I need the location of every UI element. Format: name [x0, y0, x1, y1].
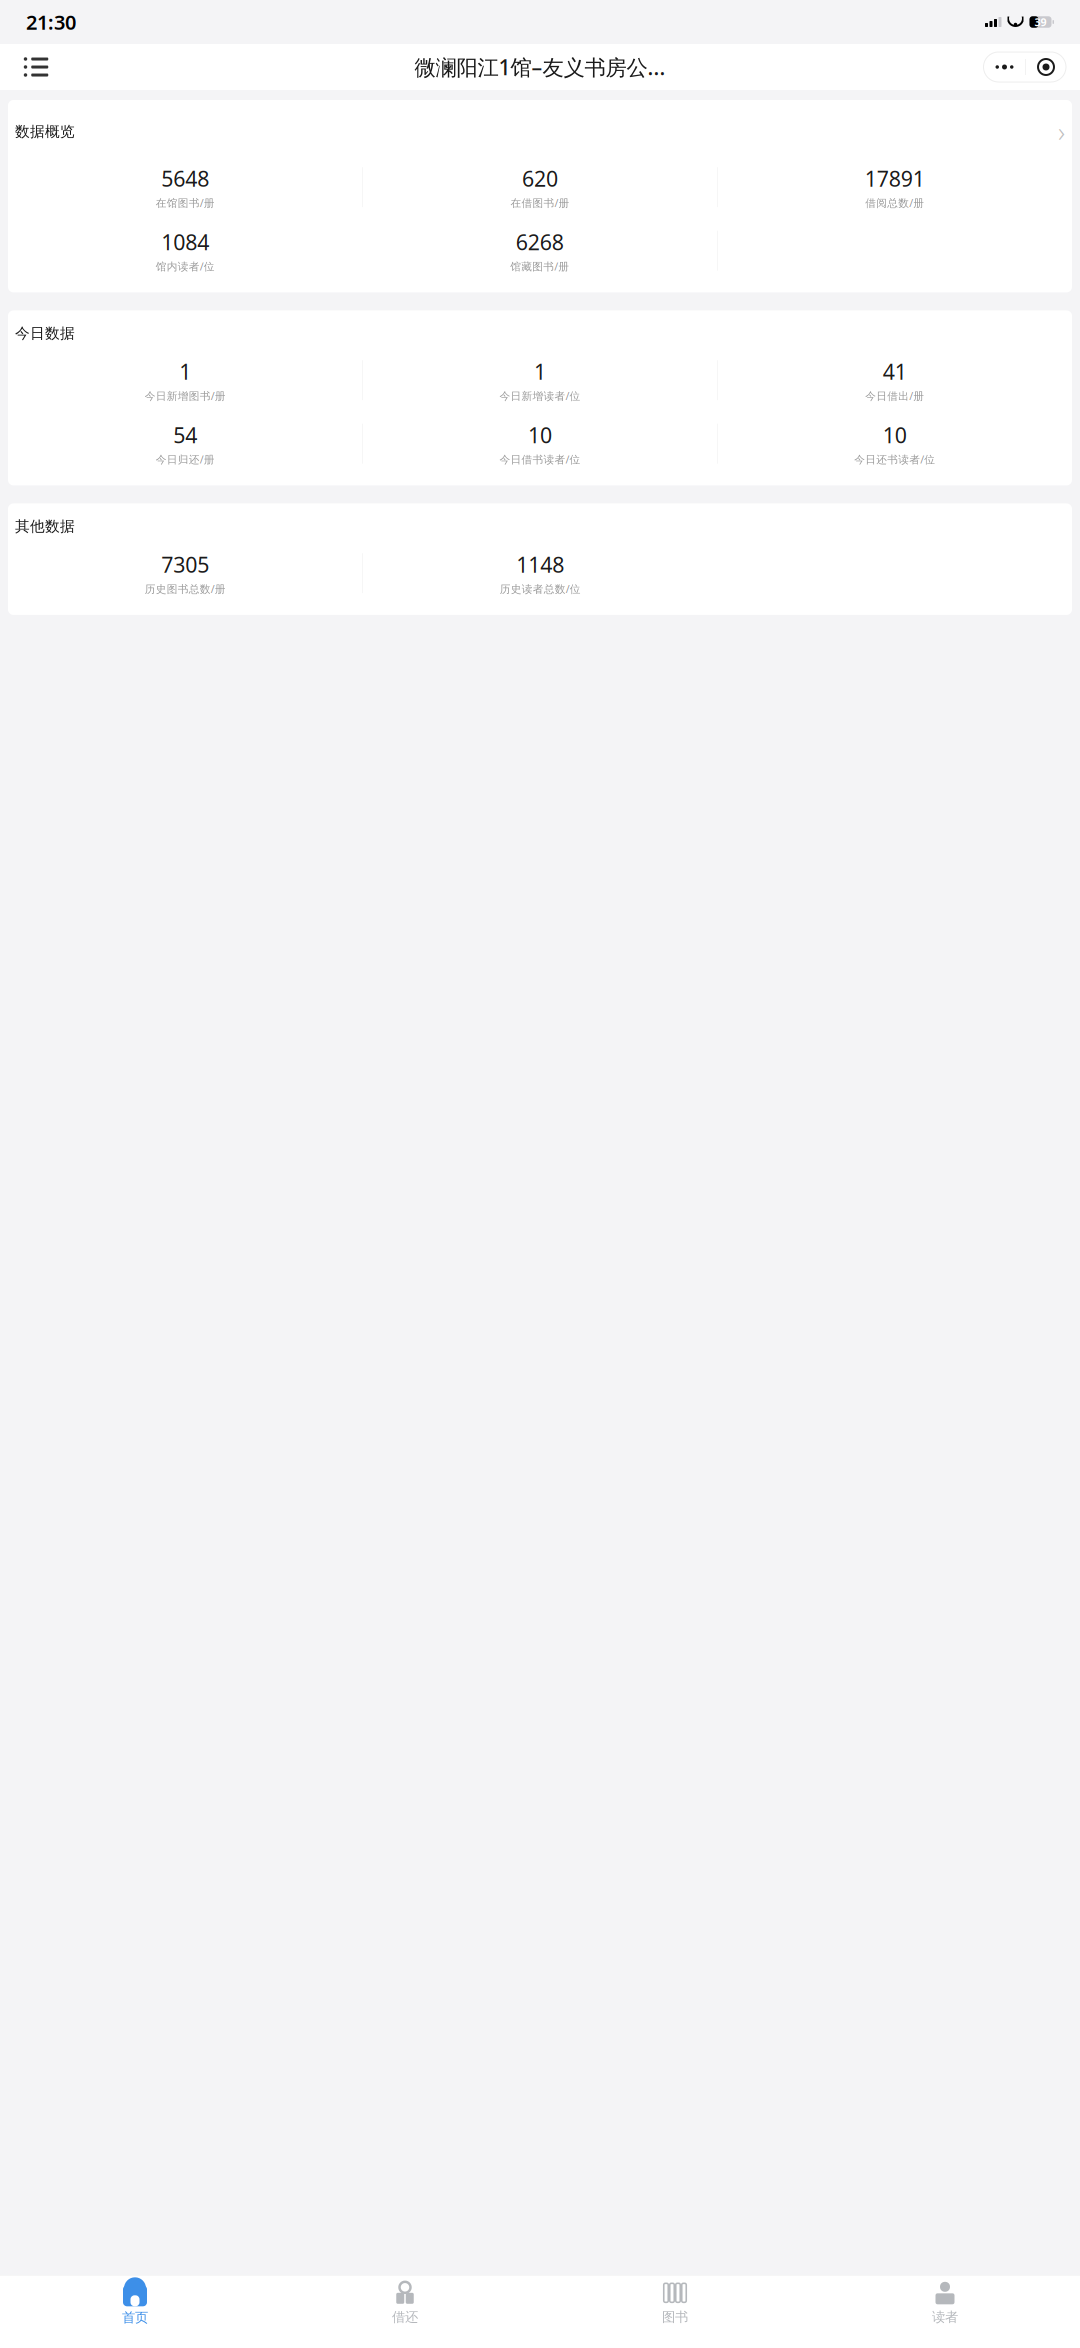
staticText: 1 [534, 357, 546, 386]
staticText: 历史读者总数/位 [500, 582, 581, 596]
staticText: 54 [173, 421, 197, 449]
staticText: 39 [1034, 15, 1046, 29]
staticText: 读者 [932, 2309, 958, 2325]
staticText: 6268 [516, 228, 564, 256]
staticText: 今日借出/册 [865, 389, 924, 403]
staticText: 借阅总数/册 [865, 196, 924, 210]
staticText: 借还 [392, 2309, 418, 2325]
staticText: 7305 [161, 550, 209, 579]
staticText: 数据概览 [15, 123, 75, 141]
button[interactable]: Close mini program [1026, 52, 1066, 82]
staticText: 620 [522, 164, 558, 193]
staticText: 首页 [122, 2309, 148, 2326]
staticText: 历史图书总数/册 [145, 582, 226, 596]
button[interactable]: More [983, 52, 1025, 82]
staticText: › [1058, 114, 1065, 149]
button[interactable]: 图书 [540, 2274, 810, 2329]
staticText: 在借图书/册 [510, 196, 569, 210]
staticText: 10 [883, 421, 907, 449]
staticText: 今日新增读者/位 [499, 389, 580, 403]
staticText: 21:30 [26, 9, 76, 35]
staticText: 1084 [161, 228, 209, 256]
staticText: 1148 [516, 550, 564, 579]
staticText: 在馆图书/册 [156, 196, 215, 210]
staticText: 其他数据 [15, 517, 75, 535]
staticText: 微澜阳江1馆–友义书房公... [414, 53, 665, 81]
staticText: 17891 [865, 164, 925, 193]
staticText: 馆内读者/位 [156, 259, 215, 273]
staticText: 今日数据 [15, 324, 75, 342]
button[interactable]: 借还 [270, 2274, 540, 2329]
button[interactable]: 首页 [0, 2273, 270, 2330]
staticText: 今日还书读者/位 [854, 452, 935, 466]
staticText: 图书 [662, 2309, 688, 2325]
staticText: 41 [883, 357, 907, 386]
staticText: 10 [528, 421, 552, 449]
button[interactable]: 读者 [810, 2274, 1080, 2329]
staticText: 今日归还/册 [156, 452, 215, 466]
staticText: 5648 [161, 164, 209, 193]
button[interactable]: Menu [14, 45, 58, 89]
staticText: 今日借书读者/位 [499, 452, 580, 466]
button[interactable]: 数据概览 [0, 100, 1080, 292]
staticText: 馆藏图书/册 [510, 259, 569, 273]
staticText: 今日新增图书/册 [145, 389, 226, 403]
staticText: 1 [179, 357, 191, 386]
